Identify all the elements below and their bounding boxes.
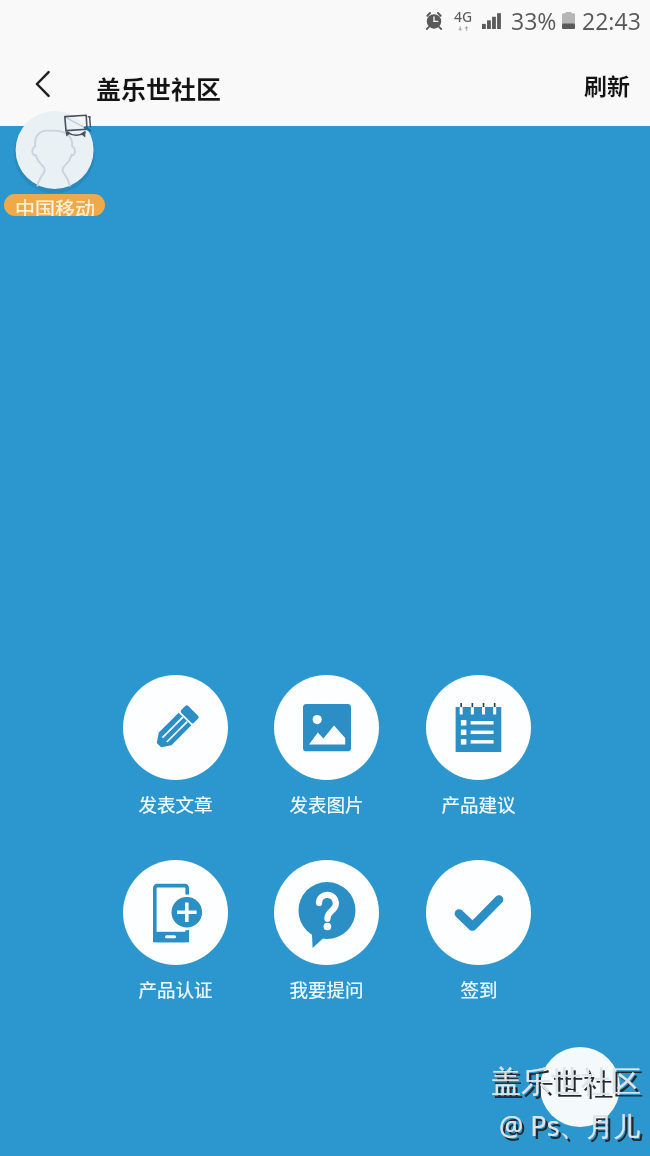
staticText: 22:43	[582, 5, 641, 36]
staticText: 刷新	[584, 68, 630, 101]
staticText: 4G	[454, 7, 473, 26]
staticText: 发表文章	[138, 791, 213, 815]
button[interactable]: 刷新	[572, 60, 642, 109]
staticText: 产品建议	[441, 791, 516, 815]
button[interactable]: 产品建议	[416, 675, 540, 815]
staticText: 盖乐世社区	[491, 1063, 641, 1101]
button[interactable]: Back	[21, 62, 65, 106]
staticText: 33%	[511, 5, 557, 36]
staticText: 中国移动	[15, 194, 95, 216]
button[interactable]: 产品认证	[113, 860, 237, 1000]
button[interactable]: 发表文章	[113, 675, 237, 815]
staticText: 产品认证	[138, 976, 213, 1000]
staticText: 盖乐世社区	[96, 70, 222, 106]
button[interactable]: 中国移动	[4, 194, 105, 216]
button[interactable]: 发表图片	[264, 675, 388, 815]
staticText: 发表图片	[289, 791, 364, 815]
button[interactable]: 签到	[416, 860, 540, 1000]
staticText: @ Ps、月儿	[499, 1107, 641, 1144]
button[interactable]: 我要提问	[264, 860, 388, 1000]
button[interactable]: Profile avatar	[10, 105, 105, 200]
staticText: 我要提问	[289, 976, 364, 1000]
staticText: 签到	[460, 976, 498, 1000]
